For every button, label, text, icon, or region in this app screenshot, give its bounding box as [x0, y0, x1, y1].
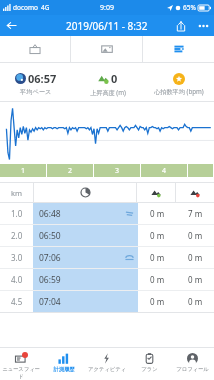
button[interactable]: 3.0: [0, 247, 214, 268]
staticText: 0 m: [150, 274, 165, 285]
staticText: 2.0: [11, 230, 23, 241]
staticText: 上昇高度 (m): [90, 88, 126, 96]
staticText: 06:50: [39, 230, 61, 242]
staticText: プラン: [141, 366, 158, 373]
staticText: 4: [162, 166, 167, 176]
button[interactable]: Back: [0, 15, 22, 36]
button[interactable]: Share: [170, 15, 192, 36]
staticText: 4.5: [11, 296, 23, 307]
staticText: 9:09: [100, 3, 114, 13]
button[interactable]: More options: [192, 15, 214, 36]
button[interactable]: 0: [72, 68, 143, 96]
staticText: 3.0: [11, 252, 23, 263]
button[interactable]: 06:57: [0, 68, 72, 96]
staticText: 06:59: [39, 274, 61, 286]
staticText: 06:57: [28, 71, 57, 86]
staticText: 07:04: [39, 296, 61, 308]
staticText: 計測履歴: [53, 366, 75, 373]
staticText: アクティビティ: [88, 366, 126, 373]
staticText: 0 m: [188, 230, 203, 241]
staticText: 2: [68, 166, 73, 176]
button[interactable]: 4.0: [0, 269, 214, 290]
staticText: 心拍数平均 (bpm): [154, 87, 204, 95]
staticText: 0 m: [188, 274, 203, 285]
staticText: 0 m: [188, 252, 203, 263]
staticText: プロフィール: [176, 366, 209, 373]
button[interactable]: 計測履歴: [42, 348, 85, 380]
button[interactable]: プロフィール: [171, 348, 214, 380]
button[interactable]: 1.0: [0, 203, 214, 224]
staticText: 2019/06/11 - 8:32: [66, 19, 148, 33]
staticText: 平均ペース: [20, 88, 52, 96]
button[interactable]: Map: [0, 36, 70, 62]
staticText: 0 m: [150, 252, 165, 263]
button[interactable]: ニュースフィード: [0, 348, 42, 380]
staticText: docomo: [13, 3, 38, 12]
button[interactable]: 心拍数平均 (bpm): [143, 70, 214, 95]
button[interactable]: 2.0: [0, 225, 214, 246]
staticText: ニュースフィード: [0, 366, 42, 380]
staticText: 0 m: [188, 296, 203, 307]
button[interactable]: Splits: [143, 36, 214, 62]
staticText: 0 m: [150, 230, 165, 241]
staticText: 4G: [41, 3, 50, 12]
staticText: 65%: [183, 3, 196, 12]
staticText: 1.0: [11, 208, 23, 219]
staticText: 7 m: [188, 208, 203, 219]
staticText: 06:48: [39, 208, 61, 220]
button[interactable]: Photos: [71, 36, 142, 62]
staticText: 0: [111, 71, 118, 86]
staticText: 0 m: [150, 208, 165, 219]
staticText: 0 m: [150, 296, 165, 307]
button[interactable]: アクティビティ: [85, 348, 128, 380]
staticText: 07:06: [39, 252, 61, 264]
button[interactable]: 4.5: [0, 291, 214, 312]
staticText: km: [11, 188, 23, 198]
staticText: 3: [115, 166, 120, 176]
staticText: 4.0: [11, 274, 23, 285]
staticText: 1: [21, 166, 26, 176]
button[interactable]: プラン: [128, 348, 171, 380]
